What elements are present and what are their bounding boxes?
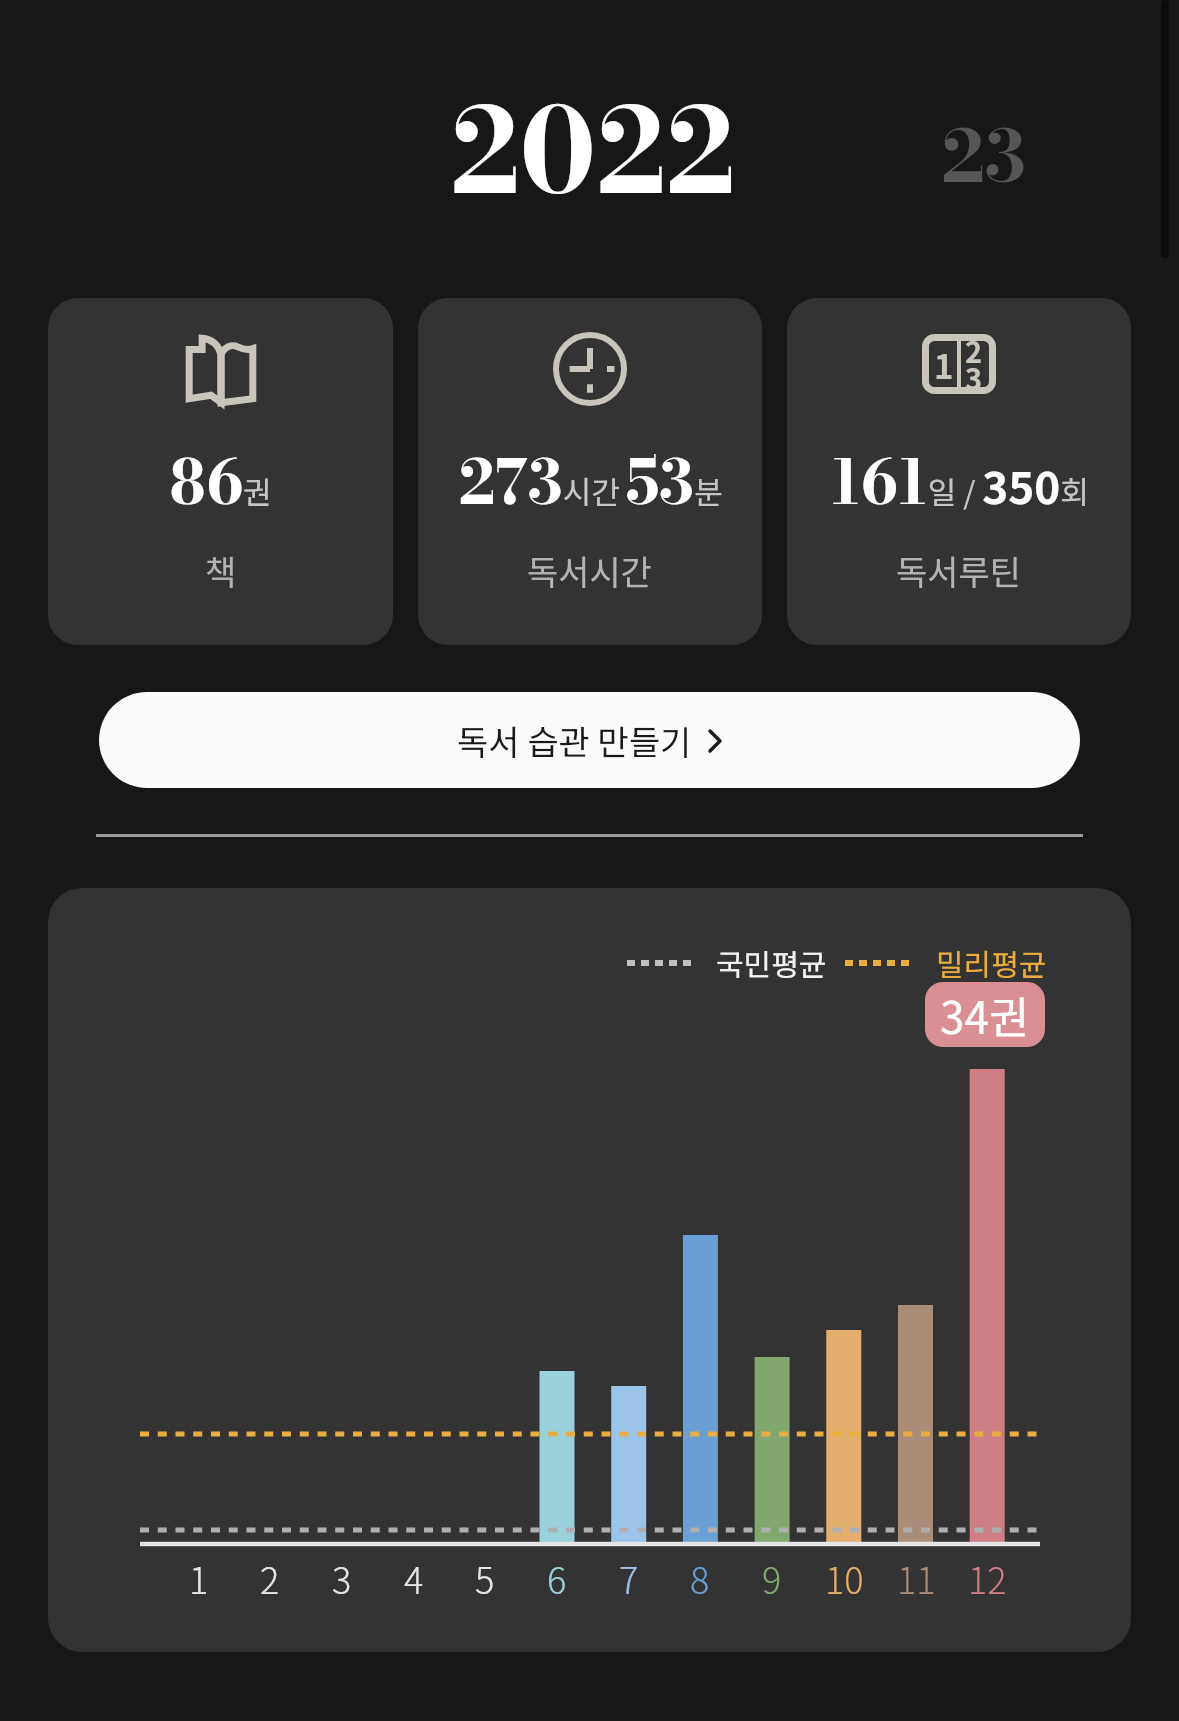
staticText: 34권 — [940, 983, 1030, 1047]
button[interactable]: 독서 습관 만들기 — [99, 692, 1080, 788]
button[interactable]: Books read — [48, 298, 393, 645]
staticText: 2 — [965, 329, 983, 371]
staticText: 국민평균 — [716, 941, 827, 984]
staticText: 161일 / 350회 — [830, 435, 1089, 528]
other: Reading routine — [922, 334, 996, 394]
staticText: 2 — [260, 1552, 280, 1604]
staticText: 7 — [619, 1552, 639, 1604]
staticText: 책 — [205, 546, 237, 595]
button[interactable]: Reading routine — [787, 298, 1131, 645]
staticText: 273시간 53분 — [458, 435, 723, 528]
staticText: 3 — [965, 356, 983, 398]
staticText: 12 — [968, 1552, 1007, 1604]
staticText: 1 — [189, 1552, 209, 1604]
staticText: 11 — [897, 1552, 936, 1604]
button[interactable]: Reading time — [418, 298, 762, 645]
staticText: 1 — [934, 341, 954, 389]
staticText: 10 — [825, 1552, 864, 1604]
staticText: 23 — [941, 100, 1027, 211]
staticText: 8 — [690, 1552, 710, 1604]
staticText: 4 — [404, 1552, 424, 1604]
staticText: 3 — [332, 1552, 352, 1604]
staticText: 독서 습관 만들기 — [457, 716, 692, 765]
staticText: 독서루틴 — [896, 546, 1022, 595]
staticText: 6 — [547, 1552, 567, 1604]
staticText: 9 — [762, 1552, 782, 1604]
staticText: 밀리평균 — [936, 941, 1047, 984]
staticText: 2022 — [450, 62, 736, 239]
staticText: 독서시간 — [527, 546, 653, 595]
staticText: 5 — [475, 1552, 495, 1604]
other: Books read — [184, 332, 258, 406]
other: Reading time — [553, 332, 627, 406]
staticText: 86권 — [169, 435, 272, 528]
